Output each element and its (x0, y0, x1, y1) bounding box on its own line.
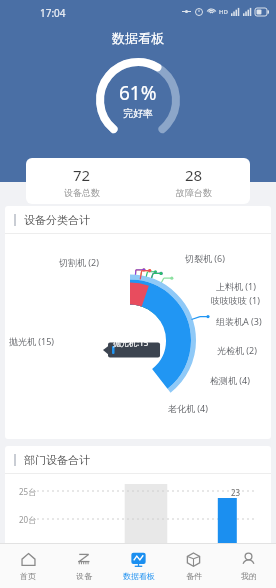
staticText: 61% (119, 80, 157, 106)
staticText: 备件 (186, 571, 202, 581)
button[interactable]: 设备分类合计 (5, 206, 271, 233)
staticText: 数据看板 (112, 30, 164, 46)
staticText: 设备总数 (64, 187, 100, 198)
button[interactable]: 72 (26, 158, 138, 204)
staticText: 25台 (19, 486, 37, 497)
button[interactable]: 28 (138, 158, 250, 204)
staticText: 首页 (20, 571, 36, 581)
staticText: HD (219, 8, 228, 16)
button[interactable]: 部门设备合计 (5, 446, 271, 473)
staticText: 抛光机:15 (113, 337, 149, 348)
staticText: 部门设备合计 (24, 453, 90, 467)
staticText: 切割机 (2) (59, 256, 99, 268)
staticText: 20台 (19, 514, 37, 525)
button[interactable]: 72 (26, 158, 250, 204)
staticText: 切裂机 (6) (185, 252, 225, 264)
staticText: 上料机 (1) (216, 280, 256, 292)
button[interactable]: 备件 (166, 544, 221, 588)
button[interactable]: 我的 (221, 544, 276, 588)
staticText: 抛光机 (15) (9, 335, 55, 347)
staticText: 28 (185, 165, 203, 185)
staticText: 光检机 (2) (217, 344, 257, 356)
button[interactable]: 首页 (0, 544, 56, 588)
staticText: 数据看板 (123, 571, 155, 581)
button[interactable]: 数据看板 (111, 544, 166, 588)
staticText: 设备分类合计 (24, 213, 90, 227)
staticText: 吱吱吱吱 (1) (211, 294, 260, 306)
staticText: 72 (73, 165, 91, 185)
button[interactable]: 设备 (56, 544, 111, 588)
staticText: 17:04 (40, 6, 66, 20)
staticText: 老化机 (4) (168, 402, 208, 414)
staticText: 检测机 (4) (210, 374, 250, 386)
staticText: 设备 (76, 571, 92, 581)
staticText: 故障台数 (176, 187, 212, 198)
staticText: 我的 (241, 571, 257, 581)
staticText: 组装机A (3) (216, 315, 262, 327)
staticText: 完好率 (123, 107, 153, 120)
staticText: 23 (231, 487, 241, 498)
